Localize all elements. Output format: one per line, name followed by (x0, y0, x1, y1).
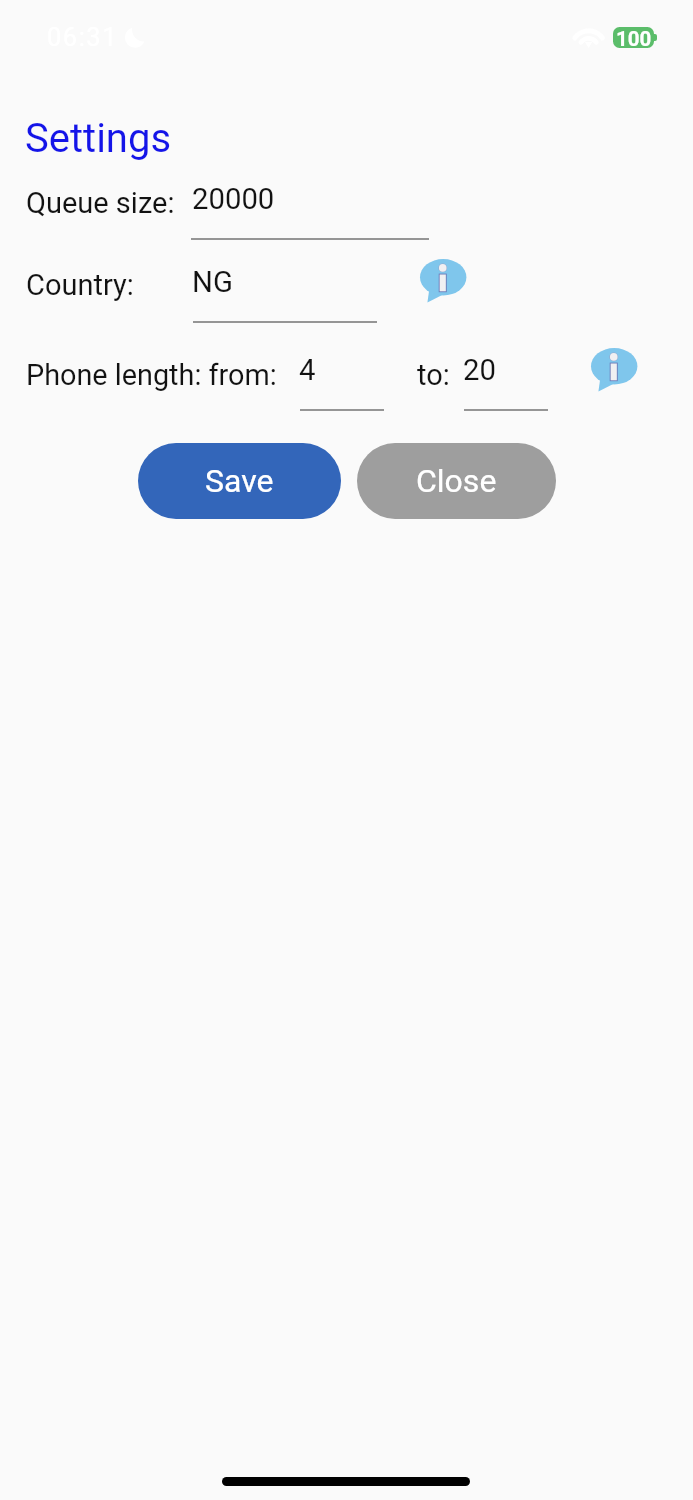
button[interactable]: NG (193, 261, 377, 323)
button[interactable]: Information (416, 255, 471, 307)
button[interactable]: 20000 (191, 178, 429, 240)
staticText: NG (192, 265, 233, 299)
staticText: Phone length: from: (26, 358, 277, 392)
staticText: Queue size: (26, 186, 175, 220)
staticText: Settings (25, 115, 172, 162)
staticText: 4 (299, 353, 316, 387)
button[interactable]: 4 (300, 349, 384, 411)
staticText: Country: (26, 268, 134, 302)
staticText: 20000 (192, 182, 275, 216)
staticText: Save (205, 462, 274, 500)
button[interactable]: Close (357, 443, 556, 519)
button[interactable]: Information (587, 344, 642, 396)
staticText: Close (416, 462, 497, 500)
staticText: to: (417, 358, 450, 392)
button[interactable]: 20 (464, 349, 548, 411)
staticText: 20 (463, 353, 496, 387)
staticText: 100 (616, 27, 652, 48)
button[interactable]: Save (138, 443, 341, 519)
